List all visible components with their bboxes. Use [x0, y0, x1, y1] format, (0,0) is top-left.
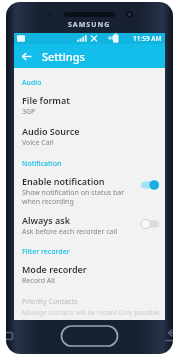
staticText: 44% — [108, 35, 118, 42]
button[interactable]: Always ask, off — [140, 218, 160, 230]
staticText: Audio — [22, 78, 42, 88]
button[interactable]: Enable notification — [14, 169, 165, 208]
staticText: Record All — [22, 276, 55, 286]
button[interactable]: Audio Source — [14, 119, 165, 150]
staticText: 3GP — [22, 107, 36, 117]
button[interactable]: Always ask — [14, 208, 165, 239]
button[interactable]: Mode recorder — [14, 257, 165, 288]
staticText: Mode recorder — [22, 263, 87, 275]
button[interactable]: File format — [14, 88, 165, 119]
staticText: Manage contacts will be record Only poss… — [22, 308, 165, 320]
staticText: Audio Source — [22, 125, 80, 137]
staticText: 11:59 AM — [133, 34, 162, 43]
staticText: Voice Call — [22, 138, 54, 148]
staticText: Settings — [42, 49, 85, 64]
staticText: Priority Contacts — [22, 297, 78, 307]
button[interactable]: Back — [16, 46, 36, 66]
staticText: Always ask — [22, 214, 71, 226]
staticText: Ask before each recorder call — [22, 227, 118, 237]
staticText: Filter recorder — [22, 247, 70, 257]
staticText: Notification — [22, 159, 62, 169]
staticText: Show notification on status bar when rec… — [22, 188, 136, 206]
staticText: Enable notification — [22, 175, 105, 187]
staticText: SAMSUNG — [68, 20, 111, 30]
button[interactable]: Enable notification, on — [140, 179, 160, 191]
staticText: File format — [22, 94, 70, 106]
